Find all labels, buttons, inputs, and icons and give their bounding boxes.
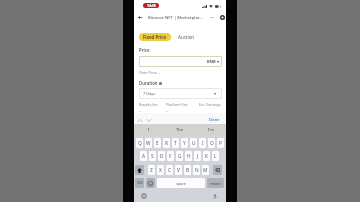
button[interactable]: Emoji: [146, 178, 155, 188]
staticText: J: [197, 153, 199, 160]
button[interactable]: Y: [181, 138, 188, 148]
button[interactable]: K: [203, 151, 210, 161]
button[interactable]: O: [208, 138, 215, 148]
button[interactable]: H: [185, 151, 192, 161]
staticText: Z: [150, 167, 153, 174]
button[interactable]: Fixed Price: [139, 33, 171, 41]
button[interactable]: The: [164, 124, 195, 135]
button[interactable]: Backspace: [213, 165, 222, 175]
button[interactable]: Done: [207, 116, 221, 123]
button[interactable]: L: [212, 151, 219, 161]
staticText: I: [202, 140, 204, 147]
button[interactable]: Q: [136, 138, 143, 148]
button[interactable]: T: [172, 138, 179, 148]
staticText: Royalty fee: [139, 102, 158, 107]
button[interactable]: Previous field: [136, 116, 144, 124]
button[interactable]: F: [167, 151, 174, 161]
button[interactable]: V: [175, 165, 182, 175]
staticText: B: [186, 167, 190, 174]
button[interactable]: S: [149, 151, 156, 161]
staticText: G: [178, 153, 182, 160]
button[interactable]: Back: [136, 13, 144, 21]
staticText: H: [187, 153, 191, 160]
button[interactable]: P: [217, 138, 224, 148]
button[interactable]: I: [199, 138, 206, 148]
button[interactable]: D: [158, 151, 165, 161]
staticText: Price: [139, 47, 150, 53]
staticText: I'm: [208, 127, 214, 132]
button[interactable]: Next field: [145, 116, 153, 124]
button[interactable]: N: [193, 165, 200, 175]
button[interactable]: I: [134, 124, 164, 135]
staticText: D: [160, 153, 164, 160]
staticText: Duration: [139, 80, 158, 86]
staticText: M: [203, 167, 208, 174]
button[interactable]: Change keyboard: [140, 192, 148, 200]
staticText: 123: [137, 181, 143, 185]
staticText: N: [195, 167, 199, 174]
button[interactable]: space: [157, 178, 205, 188]
staticText: U: [192, 140, 196, 147]
staticText: Fixed Price: [143, 34, 167, 40]
button[interactable]: Dictate: [211, 192, 219, 200]
staticText: 7 Days: [143, 91, 156, 96]
staticText: I: [148, 127, 150, 132]
staticText: A: [142, 153, 146, 160]
button[interactable]: W: [145, 138, 152, 148]
staticText: P: [219, 140, 222, 147]
button[interactable]: BNB: [139, 56, 222, 67]
button[interactable]: M: [202, 165, 209, 175]
button[interactable]: Shift: [135, 165, 144, 175]
staticText: Floor Price --: [139, 70, 161, 75]
staticText: 14:38: [147, 3, 156, 8]
button[interactable]: U: [190, 138, 197, 148]
button[interactable]: J: [194, 151, 201, 161]
staticText: Y: [183, 140, 186, 147]
staticText: --: [139, 108, 142, 113]
staticText: Platform Fee: [166, 102, 188, 107]
staticText: E: [156, 140, 159, 147]
button[interactable]: E: [154, 138, 161, 148]
staticText: Binance NFT | Marketplac…: [148, 15, 204, 21]
button[interactable]: A: [140, 151, 147, 161]
button[interactable]: C: [166, 165, 173, 175]
button[interactable]: G: [176, 151, 183, 161]
button[interactable]: More options: [208, 13, 216, 21]
staticText: S: [151, 153, 154, 160]
button[interactable]: 7 Days: [139, 88, 222, 99]
staticText: X: [159, 167, 162, 174]
button[interactable]: I'm: [195, 124, 226, 135]
staticText: V: [177, 167, 180, 174]
staticText: return: [210, 181, 221, 186]
button[interactable]: Close tab: [218, 13, 226, 21]
staticText: BNB: [207, 59, 216, 64]
staticText: K: [205, 153, 208, 160]
button[interactable]: Auction: [176, 33, 197, 41]
staticText: Est. Earnings: [199, 102, 221, 107]
staticText: Done: [209, 117, 220, 123]
staticText: Auction: [178, 34, 195, 40]
staticText: T: [174, 140, 177, 147]
staticText: F: [169, 153, 172, 160]
button[interactable]: B: [184, 165, 191, 175]
staticText: The: [176, 127, 183, 132]
staticText: Q: [138, 140, 142, 147]
staticText: W: [146, 140, 151, 147]
button[interactable]: R: [163, 138, 170, 148]
button[interactable]: X: [157, 165, 164, 175]
staticText: C: [168, 167, 172, 174]
staticText: O: [210, 140, 214, 147]
button[interactable]: 123: [135, 178, 144, 188]
button[interactable]: Z: [148, 165, 155, 175]
staticText: R: [165, 140, 168, 147]
staticText: --: [166, 108, 169, 113]
button[interactable]: return: [207, 178, 224, 188]
staticText: space: [176, 181, 186, 186]
staticText: L: [214, 153, 217, 160]
